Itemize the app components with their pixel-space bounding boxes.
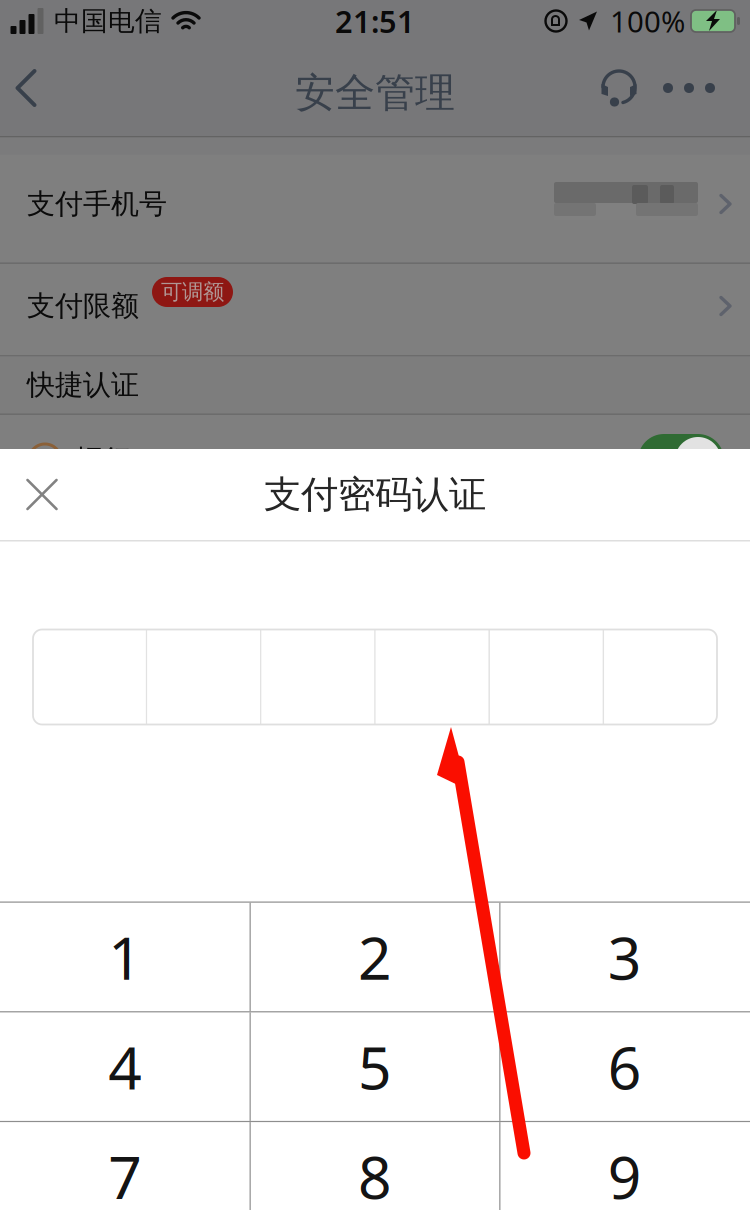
staticText: 7 <box>108 1137 142 1210</box>
staticText: 1 <box>108 918 142 996</box>
button[interactable]: 7 <box>1 1122 250 1210</box>
staticText: 中国电信 <box>54 5 162 37</box>
staticText: 可调额 <box>161 279 224 305</box>
staticText: 9 <box>608 1137 642 1210</box>
button[interactable]: 6 <box>500 1012 749 1121</box>
staticText: 支付密码认证 <box>264 472 486 517</box>
button[interactable]: More <box>658 47 720 128</box>
staticText: 100% <box>610 1 685 40</box>
staticText: 5 <box>358 1028 392 1106</box>
staticText: 快捷认证 <box>27 368 139 402</box>
staticText: 安全管理 <box>295 68 455 117</box>
button[interactable]: 3 <box>500 903 749 1011</box>
staticText: 支付手机号 <box>27 187 167 221</box>
button[interactable]: Close <box>0 449 84 540</box>
button[interactable]: 1 <box>1 903 250 1011</box>
staticText: 支付限额 <box>27 289 139 323</box>
staticText: 4 <box>108 1028 142 1106</box>
button[interactable]: Customer service <box>580 47 658 128</box>
staticText: 招行 <box>75 443 131 477</box>
button[interactable]: 支付手机号 <box>0 154 750 262</box>
button[interactable]: Back <box>0 47 52 128</box>
button[interactable]: 5 <box>251 1012 499 1121</box>
staticText: 21:51 <box>335 1 415 41</box>
button[interactable]: 支付限额 <box>0 264 750 355</box>
button[interactable]: 8 <box>251 1122 499 1210</box>
staticText: 8 <box>358 1137 392 1210</box>
button[interactable]: Quick authentication for 招行 <box>638 434 724 486</box>
button[interactable]: 4 <box>1 1012 250 1121</box>
staticText: 2 <box>358 918 392 996</box>
button[interactable]: 2 <box>251 903 499 1011</box>
staticText: 3 <box>608 918 642 996</box>
button[interactable]: 9 <box>500 1122 749 1210</box>
staticText: 6 <box>608 1028 642 1106</box>
